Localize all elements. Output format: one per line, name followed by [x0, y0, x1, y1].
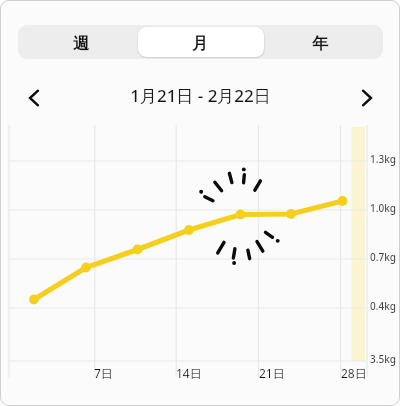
staticText: 月 — [192, 34, 208, 54]
button[interactable]: Next period — [345, 76, 389, 120]
staticText: 0.7kg — [370, 250, 396, 264]
button[interactable]: 月 — [140, 28, 260, 59]
staticText: 1月21日 - 2月22日 — [130, 84, 271, 107]
button[interactable]: 年 — [260, 28, 380, 59]
button[interactable]: Previous period — [12, 76, 56, 120]
staticText: 0.4kg — [370, 299, 396, 313]
staticText: 週 — [73, 34, 89, 54]
staticText: 28日 — [341, 365, 367, 381]
staticText: 14日 — [176, 365, 202, 381]
button[interactable]: 週 — [21, 28, 140, 59]
staticText: 3.5kg — [370, 352, 396, 366]
staticText: 1.3kg — [370, 152, 396, 166]
staticText: 21日 — [259, 365, 285, 381]
staticText: 7日 — [94, 365, 113, 381]
staticText: 年 — [312, 34, 328, 54]
staticText: 1.0kg — [370, 201, 396, 215]
